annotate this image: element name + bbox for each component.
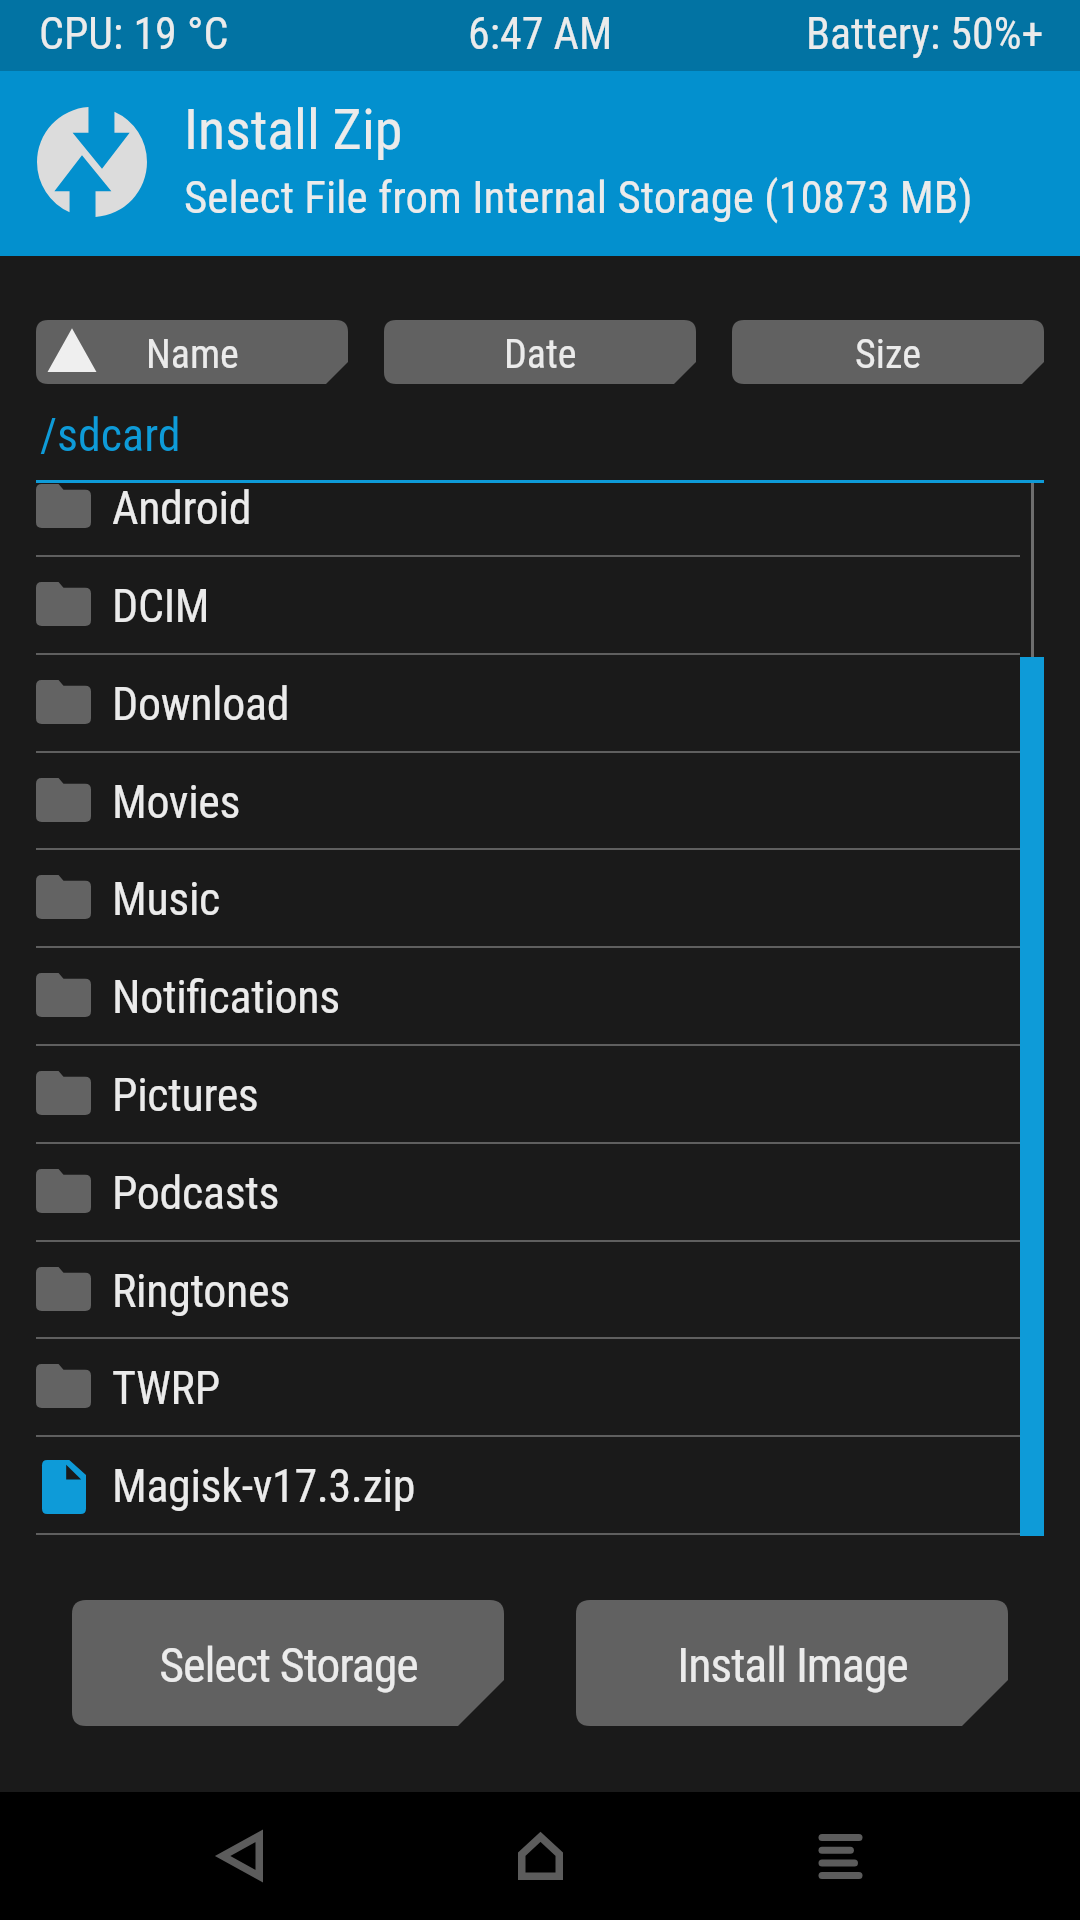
button[interactable]: Date [384, 320, 696, 384]
staticText: /sdcard [40, 408, 181, 462]
staticText: Magisk-v17.3.zip [112, 1459, 416, 1513]
staticText: TWRP [112, 1361, 220, 1415]
staticText: Ringtones [112, 1264, 290, 1318]
staticText: Size [855, 331, 921, 378]
staticText: Podcasts [112, 1166, 280, 1220]
button[interactable]: Android [0, 483, 1080, 555]
button[interactable]: Name [36, 320, 348, 384]
staticText: Notifications [112, 970, 340, 1024]
button[interactable]: Movies [0, 751, 1080, 849]
button[interactable]: Size [732, 320, 1044, 384]
button[interactable]: Install Image [576, 1600, 1008, 1726]
button[interactable]: Podcasts [0, 1142, 1080, 1240]
staticText: DCIM [112, 579, 210, 633]
staticText: 6:47 AM [468, 8, 613, 60]
staticText: Android [112, 483, 252, 535]
button[interactable]: Ringtones [0, 1240, 1080, 1338]
staticText: Download [112, 677, 290, 731]
staticText: Music [112, 872, 221, 926]
button[interactable]: Download [0, 653, 1080, 751]
staticText: Select Storage [159, 1637, 418, 1693]
button[interactable]: Magisk-v17.3.zip [0, 1435, 1080, 1533]
button[interactable]: Select Storage [72, 1600, 504, 1726]
staticText: Install Image [677, 1637, 908, 1693]
button[interactable]: Menu [750, 1792, 930, 1920]
button[interactable]: Music [0, 848, 1080, 946]
staticText: Battery: 50%+ [806, 8, 1044, 60]
button[interactable]: Notifications [0, 946, 1080, 1044]
button[interactable]: Back [150, 1792, 330, 1920]
button[interactable]: /sdcard [36, 400, 189, 470]
staticText: CPU: 19 °C [39, 8, 229, 60]
staticText: Movies [112, 775, 241, 829]
staticText: Select File from Internal Storage (10873… [184, 171, 973, 224]
button[interactable]: Home [450, 1792, 630, 1920]
button[interactable]: Pictures [0, 1044, 1080, 1142]
staticText: Name [146, 331, 239, 378]
staticText: Install Zip [184, 97, 403, 163]
button[interactable]: DCIM [0, 555, 1080, 653]
staticText: Date [504, 331, 577, 378]
staticText: Pictures [112, 1068, 259, 1122]
button[interactable]: TWRP [0, 1337, 1080, 1435]
